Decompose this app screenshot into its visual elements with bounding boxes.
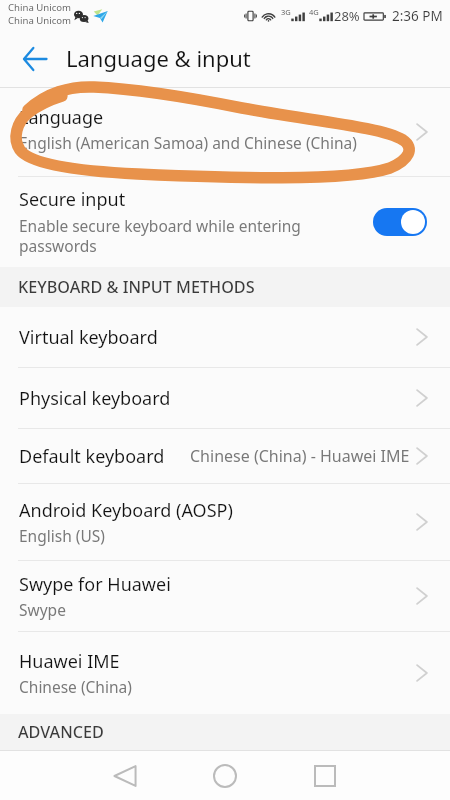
staticText: Chinese (China) [19,676,132,697]
button[interactable]: Physical keyboard [0,368,450,428]
staticText: Language [19,105,104,130]
staticText: 3G [281,7,291,17]
staticText: China Unicom [8,1,72,14]
button[interactable]: Home [201,752,249,800]
staticText: Chinese (China) - Huawei IME [190,445,410,467]
button[interactable]: Default keyboard [0,429,450,483]
button[interactable]: Secure input [0,177,450,267]
staticText: Virtual keyboard [19,325,158,350]
button[interactable]: Recents [301,752,349,800]
staticText: 2:36 PM [392,7,443,25]
staticText: Secure input [19,187,126,212]
staticText: China Unicom [8,14,72,27]
staticText: Language & input [66,43,251,73]
button[interactable]: Language [0,88,450,176]
staticText: Huawei IME [19,649,120,674]
staticText: English (American Samoa) and Chinese (Ch… [19,132,357,153]
staticText: Swype [19,599,66,620]
button[interactable]: Android Keyboard (AOSP) [0,484,450,560]
staticText: Enable secure keyboard while entering pa… [19,215,301,257]
button[interactable]: Back [101,752,149,800]
staticText: 4G [309,7,319,17]
staticText: Default keyboard [19,444,165,469]
button[interactable]: Swype for Huawei [0,561,450,631]
staticText: Physical keyboard [19,386,171,411]
staticText: Android Keyboard (AOSP) [19,498,233,523]
staticText: 28% [334,7,360,25]
staticText: KEYBOARD & INPUT METHODS [18,276,255,298]
button[interactable]: Back [0,32,66,87]
staticText: Swype for Huawei [19,572,171,597]
button[interactable]: Virtual keyboard [0,307,450,367]
staticText: English (US) [19,525,105,546]
staticText: ADVANCED [18,721,104,743]
button[interactable]: Huawei IME [0,632,450,714]
